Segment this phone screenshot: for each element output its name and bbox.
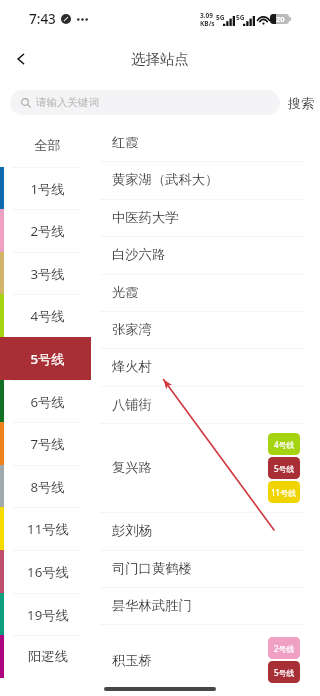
staticText: 20 [276,14,285,24]
button[interactable]: 19号线 [0,593,91,636]
button[interactable]: 4号线 [0,294,91,337]
button[interactable]: 6号线 [0,380,91,423]
staticText: 4号线 [274,439,295,450]
staticText: 烽火村 [112,358,152,375]
staticText: 请输入关键词 [36,96,99,109]
staticText: 5号线 [30,350,65,368]
staticText: 2号线 [30,222,65,240]
button[interactable]: 昙华林武胜门 [91,587,320,624]
button[interactable]: 红霞 [91,124,320,161]
button[interactable]: 彭刘杨 [91,512,320,549]
staticText: KB/s [200,19,215,28]
button[interactable]: 8号线 [0,465,91,508]
staticText: 4号线 [30,307,65,325]
staticText: 16号线 [27,563,69,581]
button[interactable]: 7号线 [0,422,91,465]
staticText: 3号线 [30,265,65,283]
staticText: 5号线 [274,463,295,474]
staticText: 阳逻线 [28,648,68,665]
button[interactable]: 烽火村 [91,348,320,385]
staticText: 光霞 [112,284,139,301]
staticText: 昙华林武胜门 [112,597,192,614]
staticText: 搜索 [288,95,314,111]
button[interactable]: 积玉桥 [91,624,320,696]
staticText: 全部 [34,137,61,154]
staticText: 11号线 [271,487,297,498]
button[interactable]: 搜索 [280,95,316,111]
staticText: 2号线 [274,643,295,654]
button[interactable]: 2号线 [0,209,91,252]
button[interactable]: 白沙六路 [91,236,320,273]
staticText: 8号线 [30,478,65,496]
staticText: 5号线 [274,667,295,678]
staticText: 八铺街 [112,396,152,413]
button[interactable]: 3号线 [0,252,91,295]
staticText: 中医药大学 [112,209,179,226]
button[interactable]: 八铺街 [91,386,320,423]
button[interactable]: 复兴路 [91,423,320,512]
staticText: 白沙六路 [112,246,166,263]
button[interactable]: 张家湾 [91,311,320,348]
staticText: 5G [236,13,245,22]
staticText: 19号线 [27,606,69,624]
button[interactable]: 黄家湖（武科大） [91,161,320,198]
button[interactable]: 返回 [0,38,42,80]
button[interactable]: 全部 [0,124,91,167]
staticText: 张家湾 [112,321,152,338]
staticText: 司门口黄鹤楼 [112,560,192,577]
staticText: 5G [216,13,225,22]
staticText: 7号线 [30,435,65,453]
staticText: 复兴路 [112,459,152,476]
staticText: 7:43 [29,10,56,28]
button[interactable]: 中医药大学 [91,199,320,236]
staticText: 3.09 [200,11,213,20]
staticText: 黄家湖（武科大） [112,171,219,188]
button[interactable]: 阳逻线 [0,635,91,678]
staticText: 选择站点 [131,50,189,68]
button[interactable]: 请输入关键词 [10,90,280,115]
staticText: 彭刘杨 [112,522,152,539]
staticText: 积玉桥 [112,652,152,669]
staticText: 1号线 [30,180,65,198]
button[interactable]: 司门口黄鹤楼 [91,550,320,587]
button[interactable]: 1号线 [0,167,91,210]
button[interactable]: 5号线 [0,337,91,380]
button[interactable]: 16号线 [0,550,91,593]
staticText: 6号线 [30,393,65,411]
button[interactable]: 光霞 [91,274,320,311]
staticText: 红霞 [112,134,139,151]
staticText: 11号线 [27,520,69,538]
button[interactable]: 11号线 [0,507,91,550]
